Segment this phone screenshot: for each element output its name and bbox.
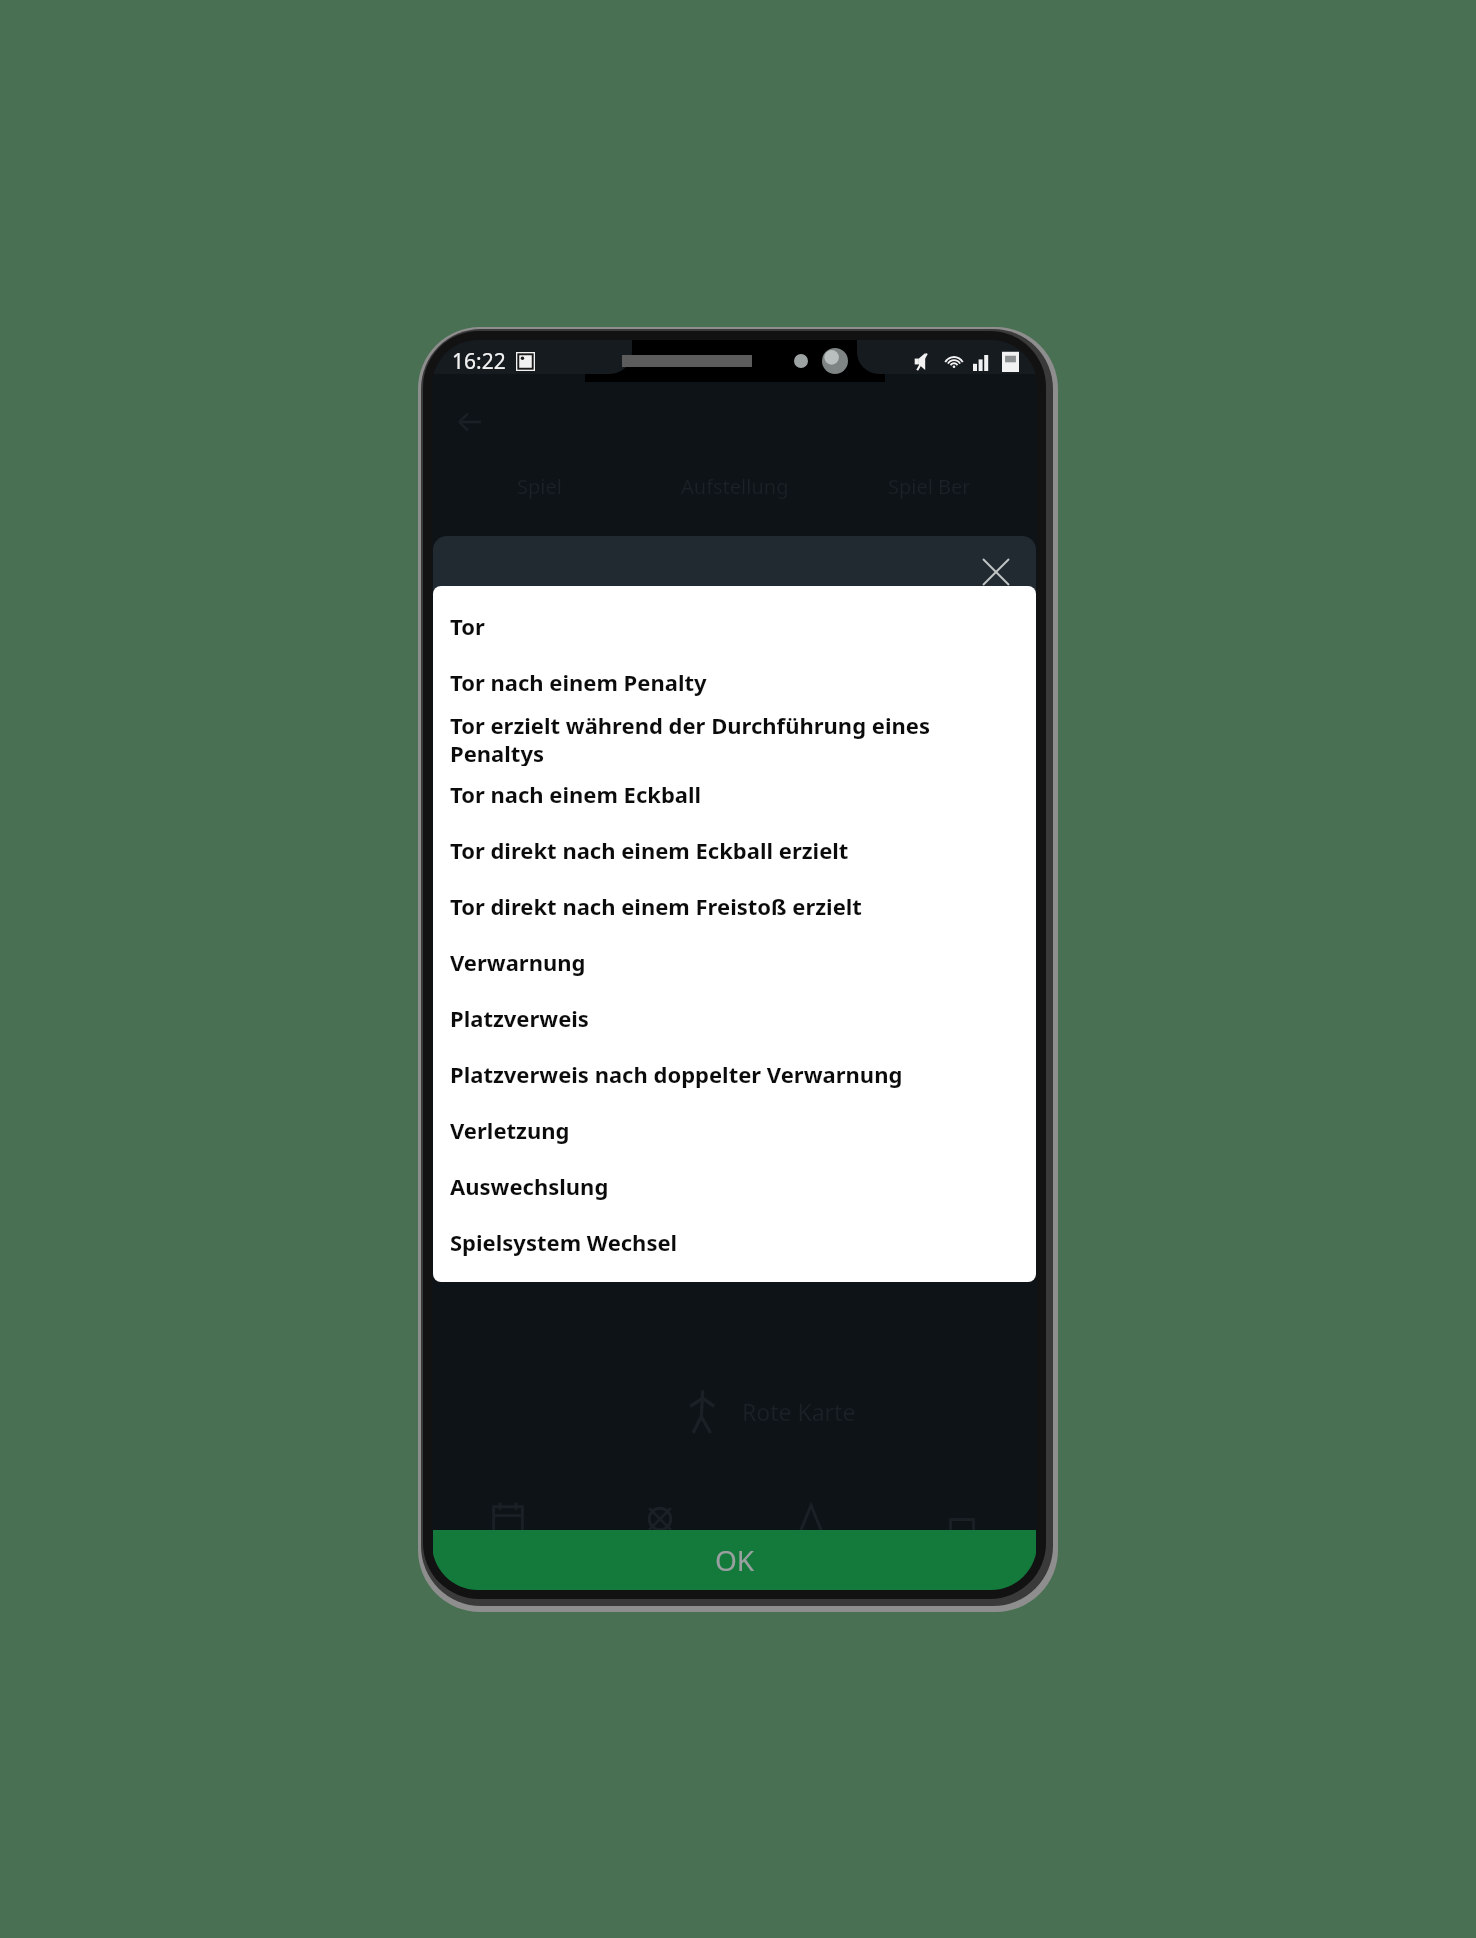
staticText: Tor nach einem Eckball [450, 779, 702, 809]
button[interactable]: OK [433, 1530, 1036, 1590]
staticText: Rote Karte [742, 1396, 856, 1427]
staticText: Tor erzielt während der Durchführung ein… [450, 710, 1019, 766]
button[interactable]: Tor nach einem Penalty [433, 654, 1036, 710]
button[interactable]: Verwarnung [433, 934, 1036, 990]
staticText: OK [715, 1541, 755, 1579]
button[interactable]: Tor erzielt während der Durchführung ein… [433, 710, 1036, 766]
button[interactable]: Platzverweis nach doppelter Verwarnung [433, 1046, 1036, 1102]
button[interactable] [449, 650, 1020, 714]
staticText: Auswechslung [450, 1171, 609, 1201]
staticText: Tor [450, 611, 485, 641]
staticText: Verwarnung [450, 947, 586, 977]
button[interactable]: Auswechslung [433, 1158, 1036, 1214]
button[interactable]: Tor direkt nach einem Freistoß erzielt [433, 878, 1036, 934]
staticText: Platzverweis nach doppelter Verwarnung [450, 1059, 903, 1089]
button[interactable]: Spielsystem Wechsel [433, 1214, 1036, 1270]
staticText: Platzverweis [450, 1003, 589, 1033]
button[interactable]: Platzverweis [433, 990, 1036, 1046]
staticText: Tor direkt nach einem Eckball erzielt [450, 835, 849, 865]
button[interactable]: Spieler [584, 1478, 735, 1590]
button[interactable]: Tor direkt nach einem Eckball erzielt [433, 822, 1036, 878]
staticText: Spiel Ber [888, 473, 971, 500]
button[interactable]: Close [970, 546, 1022, 598]
button[interactable]: Verletzung [433, 1102, 1036, 1158]
staticText: Tor nach einem Penalty [450, 667, 707, 697]
staticText: Tor direkt nach einem Freistoß erzielt [450, 891, 862, 921]
button[interactable]: Kalender [432, 1478, 584, 1590]
staticText: Spielsystem Wechsel [450, 1227, 678, 1257]
staticText: Aufstellung [681, 473, 789, 500]
button[interactable] [886, 1478, 1037, 1590]
button[interactable]: Trainings [735, 1478, 886, 1590]
staticText: Verletzung [450, 1115, 570, 1145]
button[interactable]: Tor [433, 598, 1036, 654]
button[interactable]: Tor nach einem Eckball [433, 766, 1036, 822]
staticText: 16:22 [452, 347, 506, 376]
staticText: Spiel [517, 473, 562, 500]
